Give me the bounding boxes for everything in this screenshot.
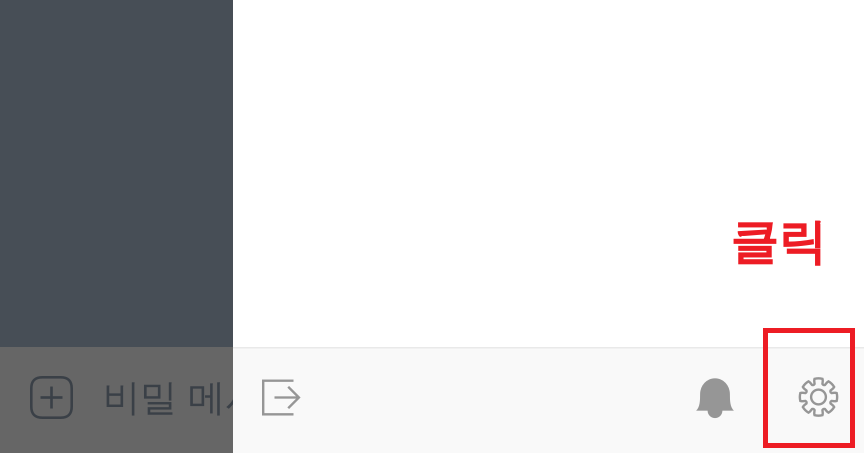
button[interactable]: Settings <box>781 347 855 453</box>
button[interactable]: 비밀 메시지 <box>0 347 233 453</box>
staticText: 비밀 메시지 <box>103 375 299 421</box>
button[interactable]: Sign out <box>233 347 299 453</box>
button[interactable]: Notifications <box>678 347 752 453</box>
staticText: 클릭 <box>730 213 826 272</box>
